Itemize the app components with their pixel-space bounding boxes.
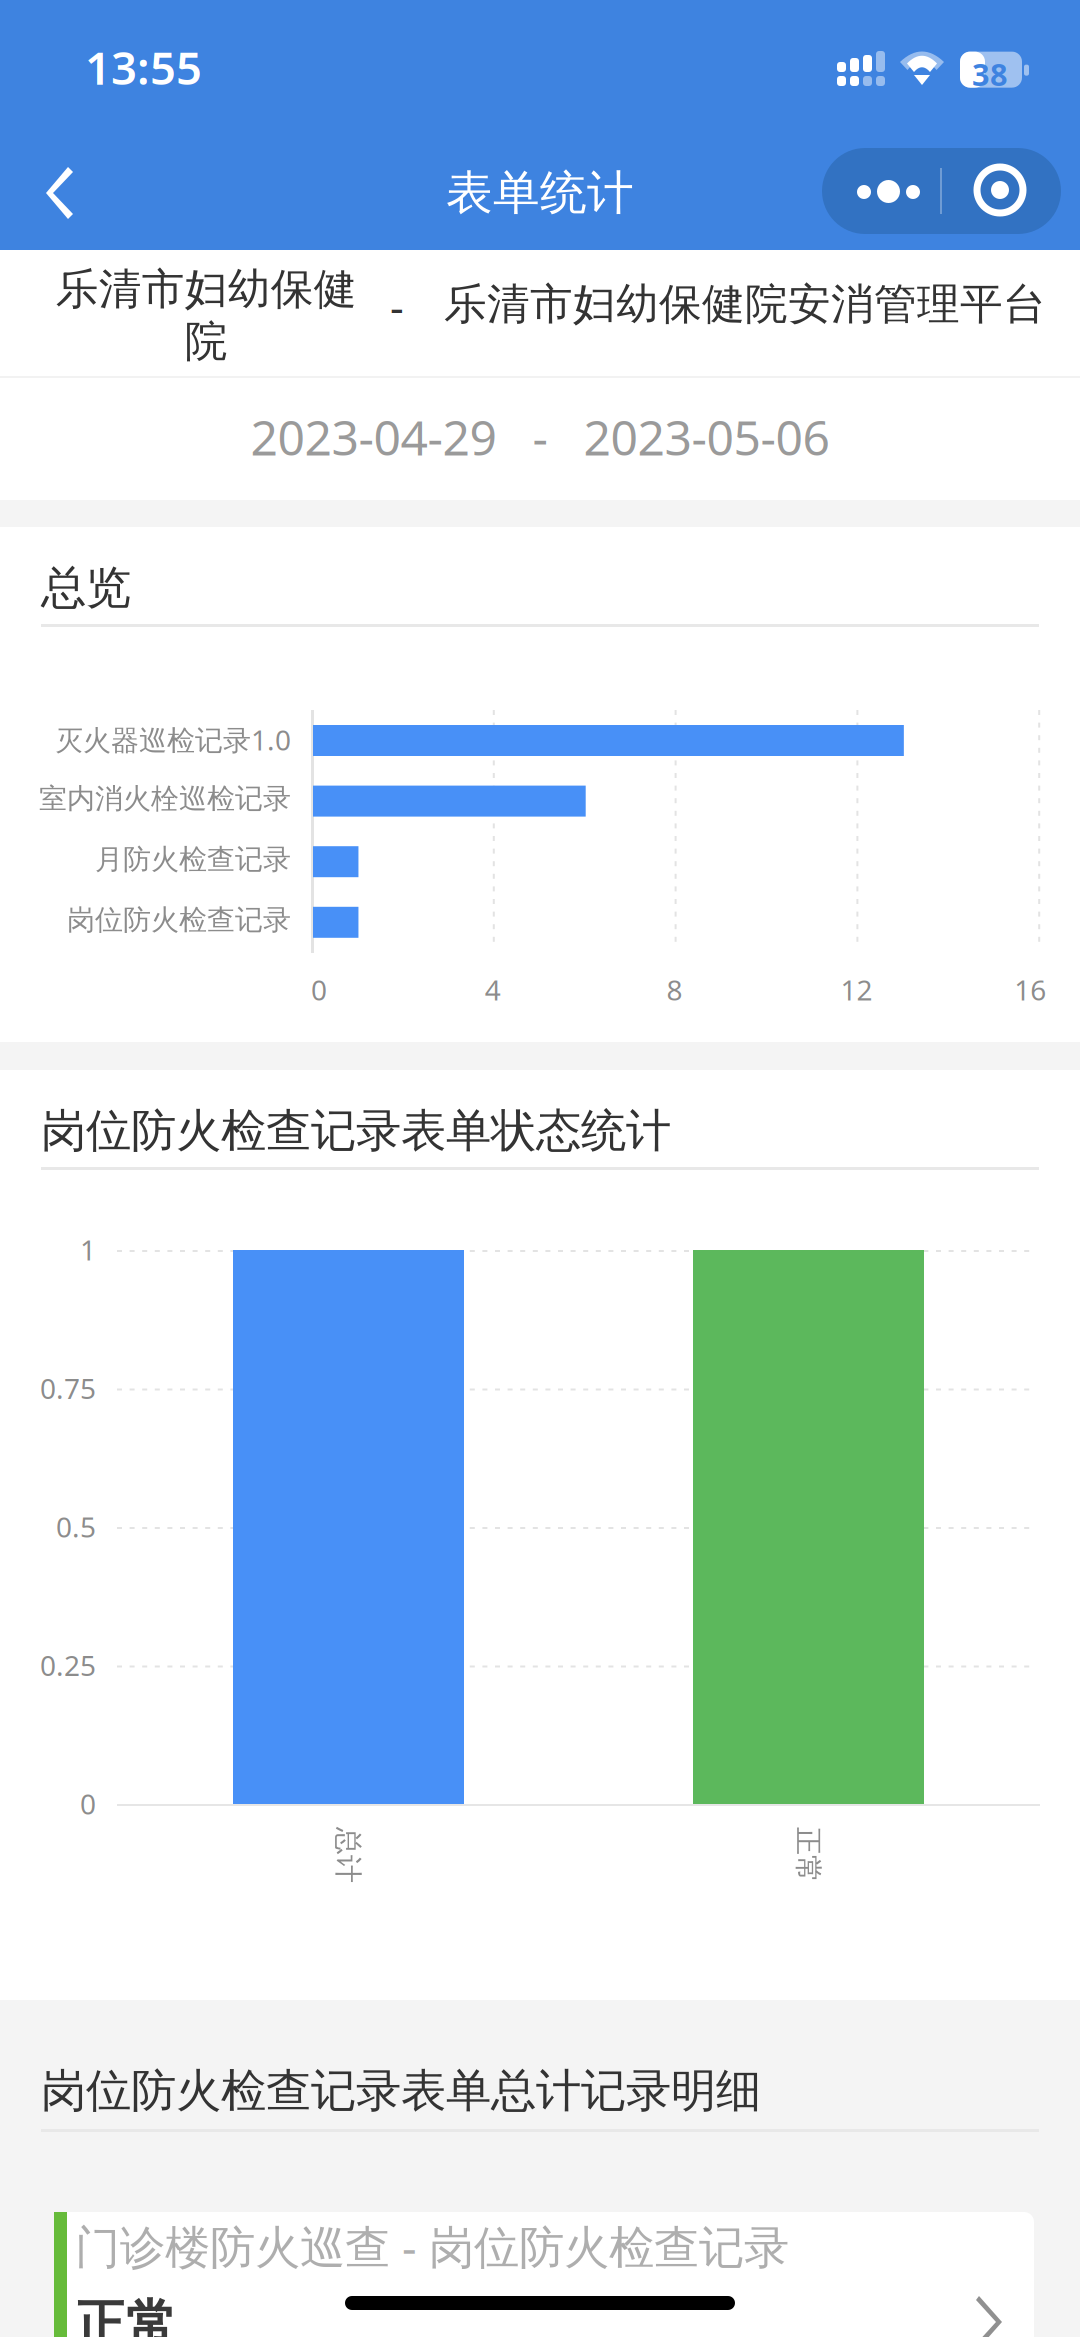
staticText: 38	[972, 54, 1008, 94]
staticText: 总计	[320, 1838, 376, 1872]
staticText: 正常	[75, 2293, 177, 2337]
staticText: 乐清市妇幼保健院安消管理平台	[444, 278, 1046, 330]
staticText: 2023-04-29 - 2023-05-06	[250, 405, 829, 469]
staticText: 门诊楼防火巡查 - 岗位防火检查记录	[75, 2216, 789, 2276]
staticText: 4	[485, 971, 501, 1008]
staticText: 1	[80, 1231, 96, 1268]
staticText: 岗位防火检查记录表单总计记录明细	[41, 2063, 761, 2119]
button[interactable]: 门诊楼防火巡查 - 岗位防火检查记录	[54, 2212, 1034, 2337]
staticText: 表单统计	[446, 164, 634, 222]
staticText: 灭火器巡检记录1.0	[55, 721, 291, 758]
staticText: 0	[80, 1785, 96, 1822]
staticText: 8	[667, 971, 683, 1008]
staticText: 岗位防火检查记录表单状态统计	[41, 1103, 671, 1159]
staticText: -	[390, 278, 404, 335]
button[interactable]: More	[822, 148, 941, 234]
staticText: 乐清市妇幼保健院	[55, 263, 356, 368]
staticText: 0	[311, 971, 327, 1008]
staticText: 13:55	[85, 37, 202, 97]
staticText: 总览	[41, 560, 131, 616]
staticText: 16	[1014, 971, 1046, 1008]
staticText: 室内消火栓巡检记录	[39, 782, 291, 816]
staticText: 正常	[780, 1838, 836, 1872]
staticText: 0.25	[40, 1646, 96, 1684]
staticText: 0.75	[40, 1369, 96, 1407]
button[interactable]: Close	[941, 148, 1061, 234]
staticText: 月防火检查记录	[95, 842, 291, 877]
staticText: 12	[840, 971, 872, 1008]
button[interactable]: Back	[18, 158, 102, 230]
staticText: 岗位防火检查记录	[67, 903, 291, 937]
staticText: 0.5	[56, 1508, 96, 1545]
